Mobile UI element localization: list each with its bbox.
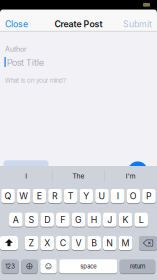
- button[interactable]: G: [72, 213, 85, 227]
- button[interactable]: Q: [1, 189, 15, 203]
- button[interactable]: O: [126, 189, 140, 203]
- staticText: Q: [4, 191, 11, 201]
- button[interactable]: M: [119, 236, 132, 250]
- button[interactable]: A: [9, 213, 23, 227]
- button[interactable]: B: [87, 236, 101, 250]
- button[interactable]: Close: [5, 18, 49, 30]
- button[interactable]: Submit: [108, 18, 152, 30]
- button[interactable]: Add: [128, 161, 148, 181]
- staticText: Submit: [123, 19, 152, 29]
- staticText: What is on your mind?: [5, 77, 66, 84]
- button[interactable]: L: [134, 213, 148, 227]
- staticText: Author: [5, 45, 27, 53]
- button[interactable]: space: [59, 259, 117, 273]
- button[interactable]: H: [87, 213, 101, 227]
- button[interactable]: Shift: [0, 236, 18, 250]
- button[interactable]: U: [95, 189, 109, 203]
- button[interactable]: J: [103, 213, 117, 227]
- staticText: I: [117, 191, 119, 201]
- button[interactable]: E: [33, 189, 46, 203]
- staticText: space: [80, 263, 96, 270]
- staticText: Post Title: [7, 57, 44, 68]
- button[interactable]: 123: [2, 259, 19, 273]
- button[interactable]: Z: [25, 236, 38, 250]
- button[interactable]: Next keyboard: [21, 259, 38, 273]
- staticText: U: [98, 191, 105, 201]
- staticText: W: [19, 191, 28, 201]
- staticText: P: [146, 191, 152, 201]
- button[interactable]: K: [119, 213, 132, 227]
- button[interactable]: N: [103, 236, 117, 250]
- staticText: G: [75, 214, 82, 225]
- button[interactable]: I: [2, 168, 50, 184]
- button[interactable]: F: [56, 213, 70, 227]
- staticText: Create Post: [54, 19, 102, 29]
- staticText: J: [107, 214, 112, 225]
- button[interactable]: I'm: [107, 168, 155, 184]
- staticText: O: [130, 191, 137, 201]
- button[interactable]: T: [64, 189, 77, 203]
- staticText: L: [139, 214, 144, 225]
- button[interactable]: S: [25, 213, 38, 227]
- button[interactable]: C: [56, 236, 70, 250]
- button[interactable]: The: [54, 168, 102, 184]
- staticText: Close: [5, 19, 28, 29]
- staticText: I'm: [126, 172, 136, 180]
- staticText: T: [68, 191, 74, 201]
- staticText: The: [72, 172, 84, 180]
- staticText: B: [91, 238, 97, 248]
- staticText: X: [44, 238, 50, 248]
- button[interactable]: X: [40, 236, 54, 250]
- staticText: 123: [5, 263, 15, 270]
- button[interactable]: W: [17, 189, 30, 203]
- button[interactable]: I: [111, 189, 124, 203]
- button[interactable]: Y: [79, 189, 93, 203]
- staticText: A: [13, 214, 19, 225]
- staticText: return: [130, 263, 145, 270]
- staticText: N: [106, 238, 113, 248]
- staticText: I: [25, 172, 27, 180]
- staticText: R: [52, 191, 58, 201]
- button[interactable]: Delete: [139, 236, 157, 250]
- staticText: H: [91, 214, 98, 225]
- button[interactable]: V: [72, 236, 85, 250]
- button[interactable]: P: [142, 189, 156, 203]
- button[interactable]: Emoji: [40, 259, 57, 273]
- staticText: M: [121, 238, 129, 248]
- staticText: Z: [28, 238, 34, 248]
- button[interactable]: return: [120, 259, 155, 273]
- staticText: C: [60, 238, 66, 248]
- staticText: E: [37, 191, 42, 201]
- staticText: K: [122, 214, 128, 225]
- button[interactable]: D: [40, 213, 54, 227]
- staticText: V: [75, 238, 81, 248]
- staticText: D: [44, 214, 50, 225]
- staticText: S: [28, 214, 34, 225]
- staticText: Y: [83, 191, 89, 201]
- button[interactable]: R: [48, 189, 62, 203]
- staticText: F: [60, 214, 65, 225]
